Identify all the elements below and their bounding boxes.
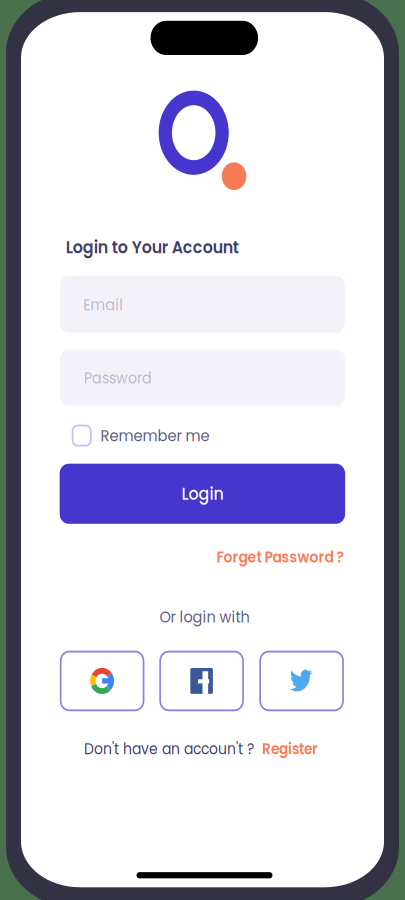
button[interactable]: Login [60,421,345,476]
button[interactable]: Remember me [72,382,232,410]
staticText: Password [84,334,152,354]
staticText: Email [83,267,123,287]
button[interactable]: Register [262,671,318,690]
staticText: Or login with [159,551,249,571]
button[interactable]: Forget Password ? [203,496,343,517]
staticText: Login [181,438,223,460]
staticText: Don't have an accoun't ? [84,671,254,691]
staticText: Forget Password ? [216,497,343,516]
button[interactable]: Sign in with Facebook [159,591,244,647]
staticText: Register [262,671,318,690]
